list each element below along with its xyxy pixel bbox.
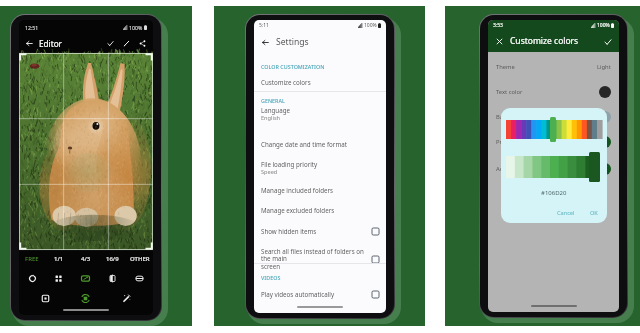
staticText: 1/1 (54, 255, 64, 263)
staticText: Primary color (496, 138, 533, 146)
button[interactable]: 4/3 (72, 252, 99, 266)
button[interactable]: OTHER (126, 252, 153, 266)
staticText: Language (261, 106, 290, 114)
button[interactable]: Done (104, 37, 117, 50)
staticText: OTHER (130, 255, 150, 263)
button[interactable]: OK (586, 208, 602, 218)
button[interactable]: Manage included folders (254, 182, 386, 198)
staticText: Play videos automatically (261, 290, 368, 298)
staticText: Cancel (557, 209, 575, 217)
staticText: Speed (261, 168, 278, 176)
staticText: Editor (39, 38, 62, 49)
staticText: Search all files instead of folders on t… (261, 247, 368, 271)
button[interactable]: Adjust (106, 290, 147, 306)
button[interactable]: Show hidden items (254, 224, 386, 238)
button[interactable]: Accent color (488, 160, 619, 178)
button[interactable]: Filters (25, 290, 65, 306)
button[interactable]: Play videos automatically (254, 287, 386, 301)
staticText: Manage excluded folders (261, 206, 335, 214)
staticText: VIDEOS (261, 274, 281, 281)
button[interactable]: Search all files instead of folders on t… (254, 244, 386, 274)
staticText: Settings (276, 36, 309, 48)
staticText: English (261, 114, 281, 122)
button[interactable]: Back (23, 37, 36, 50)
button[interactable]: Cancel (553, 208, 579, 218)
staticText: Accent color (496, 165, 530, 173)
staticText: 4/3 (81, 255, 91, 263)
staticText: Background color (496, 113, 545, 121)
staticText: Change date and time format (261, 140, 347, 148)
button[interactable]: File loading priority (254, 156, 386, 180)
button[interactable]: Language (254, 102, 386, 126)
staticText: Theme (496, 63, 515, 71)
button[interactable]: Manage excluded folders (254, 202, 386, 218)
button[interactable]: Grid (45, 270, 72, 286)
staticText: FREE (25, 255, 39, 263)
staticText: 5:11 (259, 22, 269, 29)
staticText: 100% (364, 22, 377, 29)
button[interactable]: Primary color (488, 133, 619, 151)
staticText: 100% (129, 24, 143, 31)
staticText: Manage included folders (261, 186, 334, 194)
staticText: 3:53 (493, 22, 503, 29)
button[interactable]: Rotate (19, 270, 45, 286)
button[interactable]: Save (601, 35, 614, 48)
button[interactable]: Change date and time format (254, 136, 386, 152)
button[interactable]: Close (493, 35, 506, 48)
staticText: Text color (496, 88, 523, 96)
button[interactable]: Customize colors (254, 74, 386, 90)
button[interactable]: Crop (72, 270, 99, 286)
staticText: OK (590, 209, 598, 217)
staticText: File loading priority (261, 160, 318, 168)
button[interactable]: Edit (120, 37, 133, 50)
button[interactable]: 1/1 (45, 252, 72, 266)
staticText: Customize colors (510, 35, 579, 47)
staticText: Customize colors (261, 78, 311, 86)
button[interactable]: Theme (488, 58, 619, 76)
staticText: #106D20 (541, 189, 567, 197)
staticText: GENERAL (261, 97, 285, 104)
button[interactable]: Flip (99, 270, 126, 286)
button[interactable]: Background color (488, 108, 619, 126)
button[interactable]: Transform (65, 290, 106, 306)
staticText: COLOR CUSTOMIZATION (261, 63, 325, 70)
staticText: 100% (597, 22, 610, 29)
button[interactable]: Layers (126, 270, 153, 286)
staticText: 12:51 (25, 24, 39, 31)
button[interactable]: Share (136, 37, 149, 50)
button[interactable]: Text color (488, 83, 619, 101)
button[interactable]: Back (259, 36, 272, 49)
staticText: 16/9 (106, 255, 119, 263)
button[interactable]: FREE (19, 252, 45, 266)
staticText: Show hidden items (261, 227, 368, 235)
button[interactable]: 16/9 (99, 252, 126, 266)
staticText: Light (597, 63, 611, 71)
